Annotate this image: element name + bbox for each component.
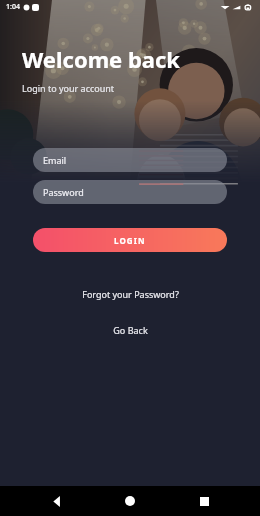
staticText: Login to your account <box>22 82 115 94</box>
button[interactable]: Go Back <box>33 320 227 340</box>
button[interactable]: LOGIN <box>33 228 227 252</box>
button[interactable]: Home <box>113 486 147 516</box>
button[interactable]: Recent apps <box>187 486 221 516</box>
staticText: Go Back <box>113 324 148 336</box>
button[interactable]: Forgot your Password? <box>33 284 227 304</box>
staticText: Welcome back <box>22 44 181 74</box>
button[interactable]: Email <box>33 148 227 172</box>
button[interactable]: Back <box>40 486 74 516</box>
button[interactable]: Password <box>33 180 227 204</box>
staticText: Forgot your Password? <box>82 288 179 300</box>
staticText: LOGIN <box>114 235 146 246</box>
staticText: Password <box>43 186 84 198</box>
staticText: 1:04 <box>6 2 20 12</box>
staticText: Email <box>43 154 67 166</box>
